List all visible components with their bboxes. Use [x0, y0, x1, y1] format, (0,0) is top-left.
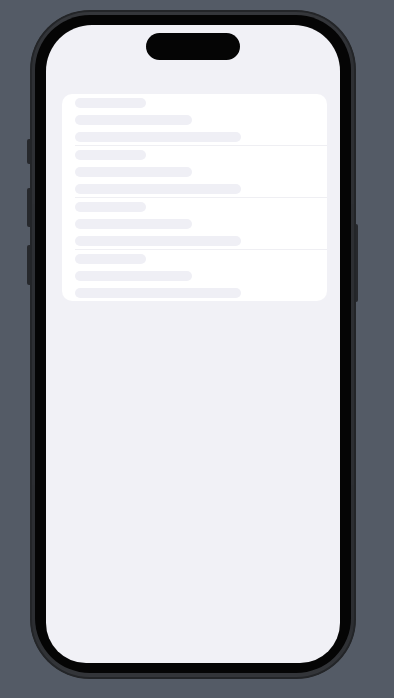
button[interactable]: [62, 146, 327, 197]
button[interactable]: [62, 250, 327, 301]
button[interactable]: [62, 198, 327, 249]
button[interactable]: [62, 94, 327, 145]
